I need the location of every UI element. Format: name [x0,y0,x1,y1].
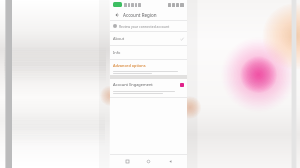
button[interactable]: Recent apps [123,157,132,166]
button[interactable]: Back [110,9,187,20]
button[interactable]: Back [166,157,175,166]
staticText: Account Engagement [113,82,153,87]
button[interactable]: Open engagement [180,83,184,87]
button[interactable]: About [110,32,187,45]
staticText: Review your connected account [119,24,170,29]
button[interactable]: Home [144,157,153,166]
button[interactable]: Back [113,11,120,18]
staticText: Account Region [123,12,157,18]
staticText: Info [113,50,121,55]
staticText: Advanced options [113,63,146,68]
staticText: About [113,36,125,41]
button[interactable]: Info [110,46,187,59]
button[interactable]: Account Engagement [110,79,187,98]
